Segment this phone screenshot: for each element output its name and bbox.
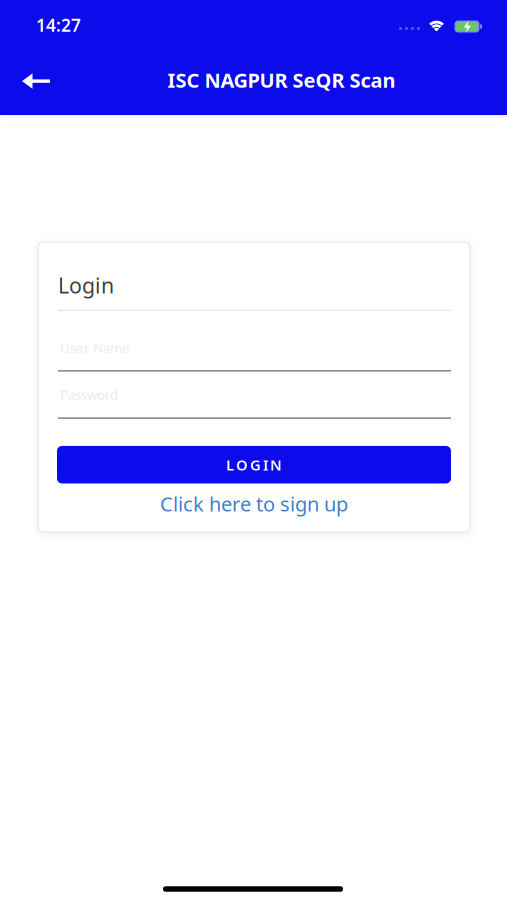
staticText: Click here to sign up: [160, 490, 348, 517]
staticText: User Name: [60, 339, 130, 356]
button[interactable]: L O G I N: [57, 446, 451, 483]
staticText: ISC NAGPUR SeQR Scan: [167, 67, 395, 93]
staticText: 14:27: [36, 13, 81, 36]
staticText: Password: [60, 386, 118, 403]
staticText: L O G I N: [226, 455, 282, 474]
button[interactable]: Click here to sign up: [38, 490, 470, 517]
staticText: Login: [58, 271, 114, 299]
button[interactable]: Back: [0, 60, 56, 104]
